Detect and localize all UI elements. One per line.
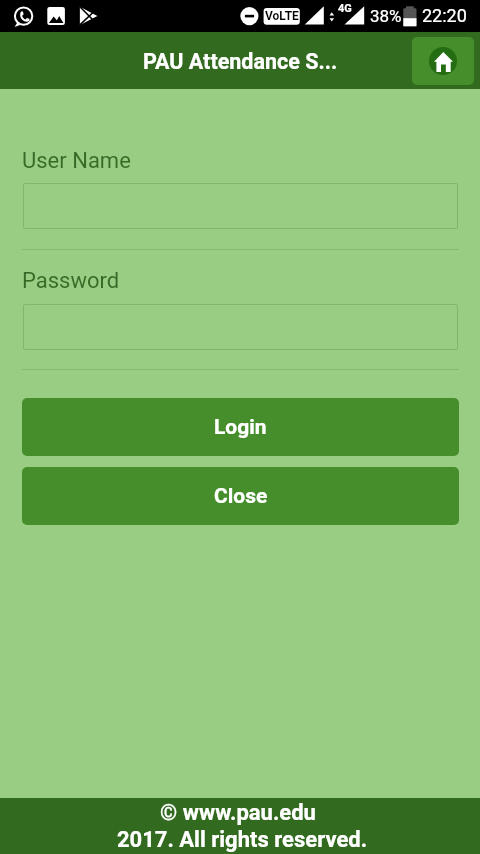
button[interactable] — [23, 183, 458, 229]
button[interactable] — [23, 304, 458, 350]
staticText: 38% — [370, 6, 402, 26]
staticText: Login — [214, 415, 267, 440]
button[interactable]: Login — [22, 398, 459, 456]
staticText: PAU Attendance S... — [143, 49, 338, 74]
staticText: 22:20 — [422, 5, 467, 26]
staticText: User Name — [22, 148, 131, 174]
staticText: 2017. All rights reserved. — [2, 827, 480, 853]
staticText: Close — [214, 484, 268, 509]
staticText: © www.pau.edu — [0, 800, 478, 826]
button[interactable]: Home — [412, 37, 474, 85]
button[interactable]: Close — [22, 467, 459, 525]
staticText: 4G — [338, 2, 352, 15]
staticText: Password — [22, 268, 120, 294]
staticText: VoLTE — [265, 9, 299, 23]
